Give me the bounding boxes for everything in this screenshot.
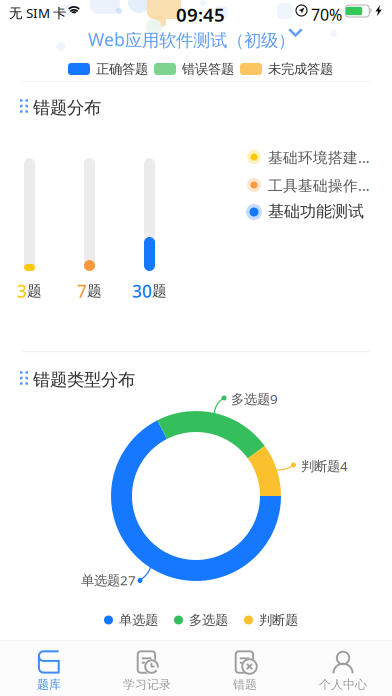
button[interactable]: 题库 — [0, 645, 98, 696]
staticText: 70% — [311, 4, 342, 25]
staticText: 3 — [17, 279, 27, 302]
staticText: Web应用软件测试（初级） — [88, 28, 295, 51]
button[interactable]: 学习记录 — [98, 645, 196, 696]
staticText: 错题 — [233, 677, 257, 692]
staticText: 单选题 — [119, 612, 158, 628]
staticText: 7 — [77, 279, 87, 302]
staticText: 工具基础操作… — [268, 175, 370, 195]
staticText: 基础环境搭建… — [268, 147, 370, 167]
staticText: 判断题 — [259, 612, 298, 628]
staticText: 判断题4 — [301, 457, 348, 475]
staticText: 错题类型分布 — [33, 369, 135, 390]
staticText: 题 — [152, 282, 167, 300]
button[interactable]: 错题 — [196, 645, 294, 696]
staticText: 个人中心 — [319, 677, 367, 692]
button[interactable]: 基础环境搭建… — [246, 146, 386, 168]
staticText: 正确答题 — [96, 61, 148, 77]
button[interactable]: 工具基础操作… — [246, 174, 386, 196]
staticText: 单选题27 — [81, 571, 136, 589]
staticText: 题库 — [37, 677, 61, 692]
staticText: 多选题9 — [231, 390, 278, 408]
button[interactable]: 个人中心 — [294, 645, 392, 696]
staticText: 题 — [27, 282, 42, 300]
staticText: 学习记录 — [123, 677, 171, 692]
staticText: 09:45 — [176, 2, 225, 27]
button[interactable]: Web应用软件测试（初级） — [88, 23, 348, 55]
staticText: 错题分布 — [33, 97, 101, 118]
staticText: 未完成答题 — [268, 61, 333, 77]
staticText: 错误答题 — [182, 61, 234, 77]
staticText: 无 SIM 卡 — [9, 4, 66, 22]
staticText: 基础功能测试 — [268, 201, 364, 221]
button[interactable]: 基础功能测试 — [246, 201, 386, 223]
staticText: 30 — [132, 279, 152, 302]
staticText: 题 — [87, 282, 102, 300]
staticText: 多选题 — [189, 612, 228, 628]
